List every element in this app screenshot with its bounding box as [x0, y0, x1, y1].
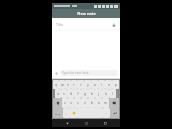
button[interactable]: Shift — [53, 98, 62, 108]
staticText: j — [98, 92, 99, 96]
staticText: n — [98, 101, 100, 105]
button[interactable]: o — [105, 80, 112, 89]
button[interactable]: d — [67, 89, 74, 98]
staticText: w — [61, 83, 64, 87]
button[interactable]: b — [88, 98, 95, 108]
staticText: q — [55, 83, 57, 87]
button[interactable]: . — [103, 108, 110, 118]
button[interactable]: Recent apps — [101, 119, 109, 127]
other: Lock note — [112, 23, 116, 27]
button[interactable]: w — [59, 80, 65, 89]
button[interactable]: c — [74, 98, 81, 108]
button[interactable]: Add attachment — [54, 71, 59, 76]
button[interactable]: Home — [82, 119, 90, 127]
button[interactable]: Type the note here — [62, 70, 116, 76]
button[interactable]: l — [109, 89, 116, 98]
button[interactable]: r — [71, 80, 77, 89]
button[interactable]: Backspace — [109, 98, 119, 108]
button[interactable]: e — [65, 80, 71, 89]
staticText: s — [63, 92, 65, 96]
staticText: x — [70, 101, 72, 105]
button[interactable]: f — [74, 89, 81, 98]
button[interactable]: a — [55, 89, 61, 98]
button[interactable]: j — [95, 89, 102, 98]
staticText: 🙂 — [72, 111, 76, 115]
staticText: e — [67, 83, 69, 87]
staticText: g — [84, 92, 86, 96]
staticText: Type the note here — [62, 71, 89, 75]
button[interactable]: Enter — [110, 108, 119, 118]
staticText: a — [57, 92, 59, 96]
button[interactable]: m — [102, 98, 109, 108]
button[interactable]: 🙂 — [70, 108, 77, 118]
button[interactable]: Back — [63, 119, 71, 127]
staticText: u — [94, 83, 96, 87]
staticText: ?123 — [55, 112, 61, 115]
button[interactable]: p — [112, 80, 119, 89]
staticText: y — [87, 83, 89, 87]
button[interactable]: i — [98, 80, 105, 89]
staticText: , — [66, 111, 67, 115]
staticText: l — [112, 92, 113, 96]
staticText: c — [77, 101, 79, 105]
button[interactable]: q — [53, 80, 59, 89]
staticText: m — [104, 101, 107, 105]
button[interactable]: x — [68, 98, 74, 108]
staticText: d — [70, 92, 72, 96]
staticText: Title — [56, 22, 63, 27]
button[interactable]: s — [61, 89, 67, 98]
button[interactable]: g — [81, 89, 88, 98]
staticText: r — [73, 83, 75, 87]
button[interactable]: h — [88, 89, 95, 98]
staticText: p — [115, 83, 117, 87]
staticText: New note — [77, 11, 96, 16]
button[interactable]: k — [102, 89, 109, 98]
staticText: o — [108, 83, 110, 87]
button[interactable]: , — [63, 108, 70, 118]
button[interactable]: v — [81, 98, 88, 108]
button[interactable]: y — [84, 80, 91, 89]
staticText: k — [105, 92, 107, 96]
button[interactable]: Title — [56, 22, 116, 27]
button[interactable]: z — [62, 98, 68, 108]
staticText: i — [101, 83, 102, 87]
staticText: b — [91, 101, 93, 105]
staticText: v — [84, 101, 86, 105]
staticText: . — [106, 111, 107, 115]
staticText: h — [91, 92, 93, 96]
staticText: t — [80, 83, 82, 87]
button[interactable]: u — [91, 80, 98, 89]
button[interactable]: n — [95, 98, 102, 108]
staticText: f — [77, 92, 79, 96]
button[interactable]: Symbols — [53, 108, 63, 118]
button[interactable]: t — [77, 80, 84, 89]
button[interactable]: New note — [52, 9, 120, 18]
staticText: z — [64, 101, 66, 105]
